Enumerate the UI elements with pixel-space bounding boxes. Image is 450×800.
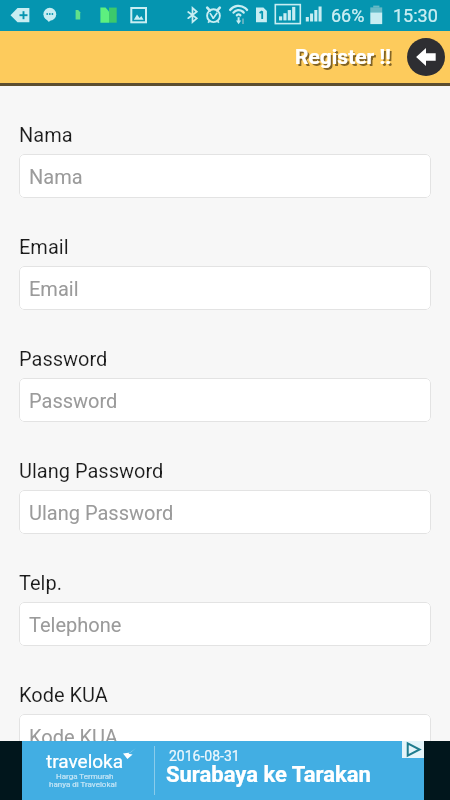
staticText: Email — [19, 235, 69, 258]
button[interactable]: Telephone — [19, 602, 431, 646]
staticText: Kode KUA — [19, 683, 108, 706]
button[interactable]: Ulang Password — [19, 490, 431, 534]
staticText: Register !! — [295, 45, 391, 70]
button[interactable]: Password — [19, 378, 431, 422]
staticText: hanya di Traveloka! — [49, 780, 117, 789]
staticText: 15:30 — [393, 5, 438, 26]
staticText: Kode KUA — [29, 725, 118, 748]
button[interactable]: Nama — [19, 154, 431, 198]
button[interactable]: Kode KUA — [19, 714, 431, 758]
staticText: Password — [19, 347, 108, 370]
staticText: Ulang Password — [19, 459, 164, 482]
staticText: Surabaya ke Tarakan — [166, 762, 371, 788]
staticText: 2016-08-31 — [169, 748, 240, 764]
staticText: Telephone — [29, 613, 122, 636]
button[interactable]: Email — [19, 266, 431, 310]
staticText: traveloka — [46, 750, 124, 772]
staticText: Telp. — [19, 571, 62, 594]
staticText: Password — [29, 389, 118, 412]
staticText: 66% — [331, 5, 365, 26]
staticText: Nama — [29, 165, 83, 188]
button[interactable]: traveloka — [0, 741, 450, 800]
staticText: Nama — [19, 123, 73, 146]
staticText: Email — [29, 277, 79, 300]
staticText: Harga Termurah — [56, 772, 114, 781]
staticText: Register !! — [297, 47, 393, 72]
staticText: Ulang Password — [29, 501, 174, 524]
button[interactable]: Register !! — [295, 45, 391, 70]
button[interactable]: Back — [407, 38, 445, 76]
